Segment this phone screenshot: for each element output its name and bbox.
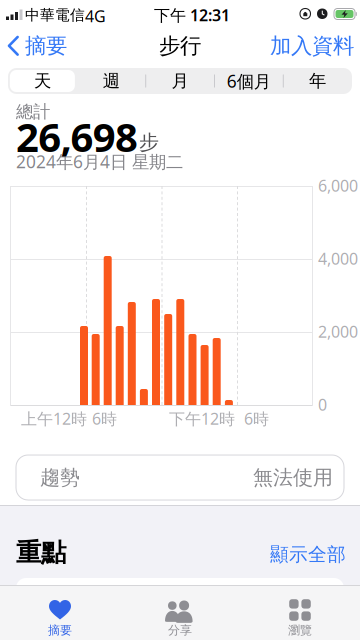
staticText: 6,000: [318, 175, 358, 196]
staticText: 總計: [16, 101, 50, 122]
staticText: 顯示全部: [270, 543, 346, 566]
staticText: 下午12時: [169, 408, 235, 429]
staticText: 天: [34, 70, 51, 92]
staticText: 6個月: [227, 69, 271, 92]
staticText: 摘要: [48, 623, 72, 638]
button[interactable]: 年: [283, 68, 352, 94]
staticText: 年: [309, 70, 326, 92]
staticText: 無法使用: [253, 465, 333, 490]
button[interactable]: 趨勢: [16, 455, 344, 500]
staticText: 4G: [85, 5, 106, 27]
staticText: 6時: [244, 408, 269, 429]
staticText: 重點: [16, 537, 66, 568]
button[interactable]: 加入資料: [270, 28, 354, 64]
staticText: 上午12時: [21, 408, 87, 429]
staticText: 摘要: [25, 33, 67, 59]
staticText: 月: [171, 70, 188, 92]
button[interactable]: 天: [8, 68, 77, 94]
button[interactable]: 週: [77, 68, 146, 94]
button[interactable]: 月: [146, 68, 214, 94]
staticText: 中華電信: [25, 6, 85, 24]
staticText: 26,698: [16, 110, 138, 163]
staticText: 4,000: [318, 248, 358, 269]
staticText: 瀏覽: [288, 623, 312, 638]
button[interactable]: 瀏覽: [240, 585, 360, 640]
button[interactable]: 返回摘要: [9, 28, 67, 64]
button[interactable]: 6個月: [214, 68, 283, 94]
staticText: 趨勢: [40, 465, 80, 490]
button[interactable]: 顯示全部: [270, 543, 346, 566]
button[interactable]: 分享: [120, 585, 240, 640]
staticText: 下午 12:31: [154, 4, 230, 26]
staticText: 分享: [168, 623, 192, 638]
staticText: 步行: [159, 33, 201, 59]
staticText: 週: [103, 70, 120, 92]
staticText: 6時: [92, 408, 117, 429]
staticText: 加入資料: [270, 33, 354, 59]
staticText: 步: [139, 130, 159, 155]
staticText: 2024年6月4日 星期二: [16, 150, 183, 173]
staticText: 2,000: [318, 321, 358, 342]
staticText: 0: [318, 394, 327, 415]
button[interactable]: 摘要: [0, 585, 120, 640]
